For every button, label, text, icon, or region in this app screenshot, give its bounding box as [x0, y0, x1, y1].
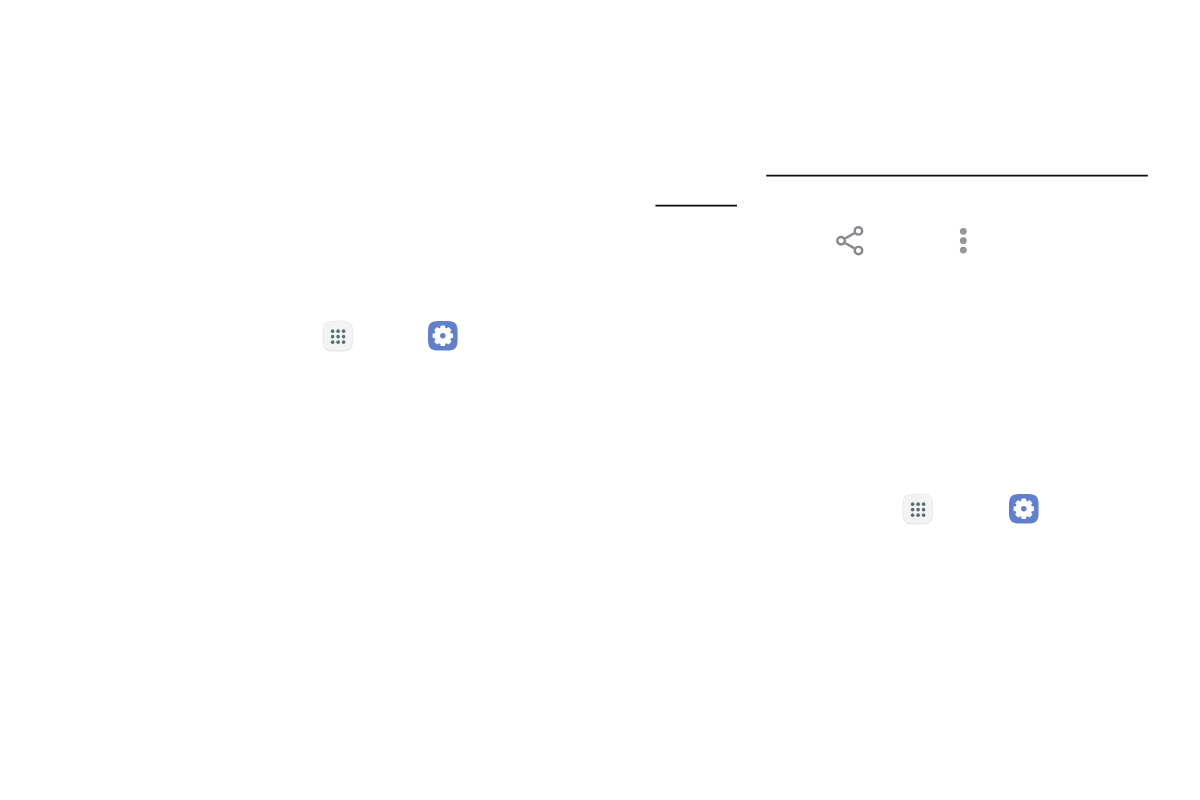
button[interactable]: Settings: [1009, 494, 1043, 528]
button[interactable]: Share: [835, 225, 867, 257]
button[interactable]: Apps: [903, 494, 937, 528]
button[interactable]: More options: [956, 227, 972, 257]
button[interactable]: Apps: [323, 321, 357, 355]
button[interactable]: Settings: [428, 321, 462, 355]
